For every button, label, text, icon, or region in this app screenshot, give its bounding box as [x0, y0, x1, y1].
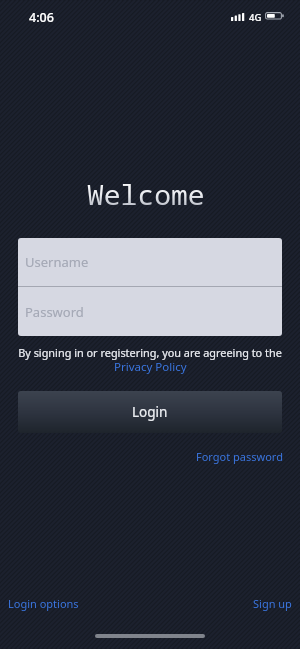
staticText: Sign up — [253, 596, 292, 611]
staticText: Privacy Policy — [114, 359, 187, 375]
other: Battery level — [265, 12, 284, 21]
staticText: 4G — [249, 11, 262, 24]
staticText: Username — [25, 253, 89, 271]
staticText: Password — [25, 303, 84, 321]
button[interactable]: Sign up — [253, 596, 292, 611]
staticText: Login options — [8, 596, 79, 611]
button[interactable]: Login options — [8, 596, 79, 611]
button[interactable]: Password — [18, 287, 282, 336]
other: Cellular signal strength — [231, 12, 244, 21]
button[interactable]: Username — [18, 238, 282, 286]
button[interactable]: Privacy Policy — [114, 359, 187, 375]
staticText: Login — [132, 403, 168, 421]
staticText: Forgot password — [196, 449, 283, 464]
button[interactable]: Forgot password — [196, 449, 283, 464]
staticText: 4:06 — [29, 9, 54, 26]
staticText: By signing in or registering, you are ag… — [18, 345, 282, 360]
button[interactable]: Login — [18, 391, 282, 433]
staticText: Welcome — [87, 175, 205, 213]
